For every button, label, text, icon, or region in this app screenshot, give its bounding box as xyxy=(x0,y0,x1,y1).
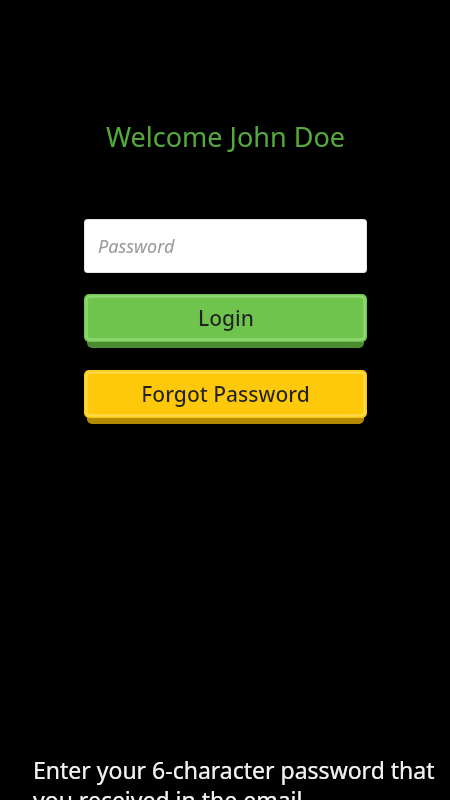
staticText: Password xyxy=(98,234,175,259)
button[interactable]: Password xyxy=(84,219,367,273)
staticText: Forgot Password xyxy=(141,380,310,409)
button[interactable]: Forgot Password xyxy=(84,370,367,424)
staticText: Welcome John Doe xyxy=(106,118,345,155)
staticText: Login xyxy=(198,304,254,333)
staticText: Enter your 6-character password that you… xyxy=(33,754,450,800)
button[interactable]: Login xyxy=(84,294,367,348)
